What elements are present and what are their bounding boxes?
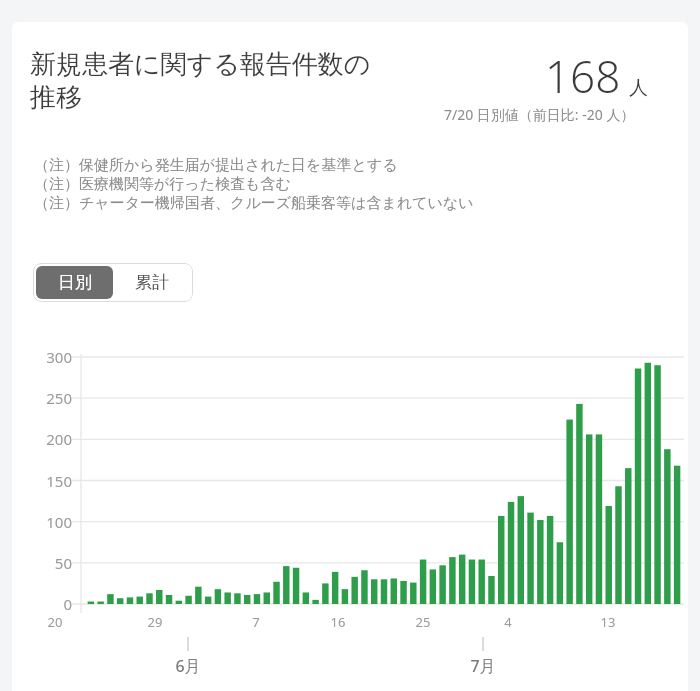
staticText: 0: [20, 594, 72, 614]
staticText: 13: [588, 613, 628, 631]
staticText: 7/20 日別値（前日比: -20 人）: [444, 105, 635, 124]
button[interactable]: 日別: [36, 266, 113, 299]
staticText: 推移: [30, 81, 82, 114]
staticText: （注）チャーター機帰国者、クルーズ船乗客等は含まれていない: [34, 194, 474, 213]
staticText: 100: [20, 512, 72, 532]
staticText: 4: [488, 613, 528, 631]
staticText: 新規患者に関する報告件数の: [30, 48, 371, 81]
staticText: （注）保健所から発生届が提出された日を基準とする: [34, 156, 398, 175]
button[interactable]: 累計: [113, 266, 190, 299]
staticText: 25: [403, 613, 443, 631]
staticText: 168: [545, 46, 621, 106]
staticText: 7: [236, 613, 276, 631]
staticText: 150: [20, 471, 72, 491]
staticText: （注）医療機関等が行った検査も含む: [34, 175, 291, 194]
staticText: 250: [20, 388, 72, 408]
staticText: 50: [20, 553, 72, 573]
staticText: 6月: [163, 655, 213, 677]
staticText: 累計: [135, 272, 169, 293]
button[interactable]: 新規患者報告件数の推移グラフ: [20, 340, 690, 630]
staticText: 日別: [58, 272, 92, 293]
staticText: 20: [35, 613, 75, 631]
staticText: 16: [318, 613, 358, 631]
staticText: 200: [20, 429, 72, 449]
staticText: 300: [20, 347, 72, 367]
staticText: 29: [135, 613, 175, 631]
staticText: 7月: [458, 655, 508, 677]
staticText: 人: [629, 76, 648, 100]
